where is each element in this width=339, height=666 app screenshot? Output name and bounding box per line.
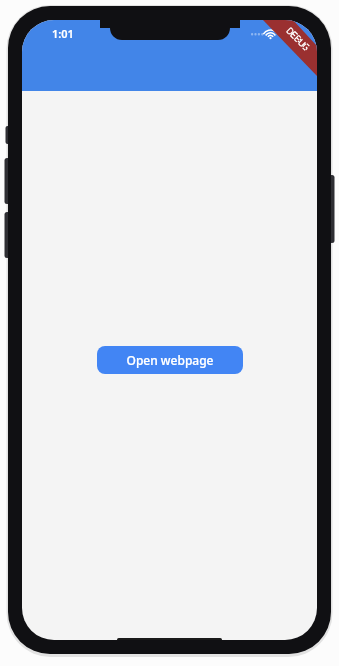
other: Debug build banner bbox=[281, 12, 315, 36]
staticText: Open webpage bbox=[126, 352, 214, 368]
staticText: 1:01 bbox=[52, 26, 74, 41]
button[interactable]: Open webpage bbox=[97, 346, 243, 374]
